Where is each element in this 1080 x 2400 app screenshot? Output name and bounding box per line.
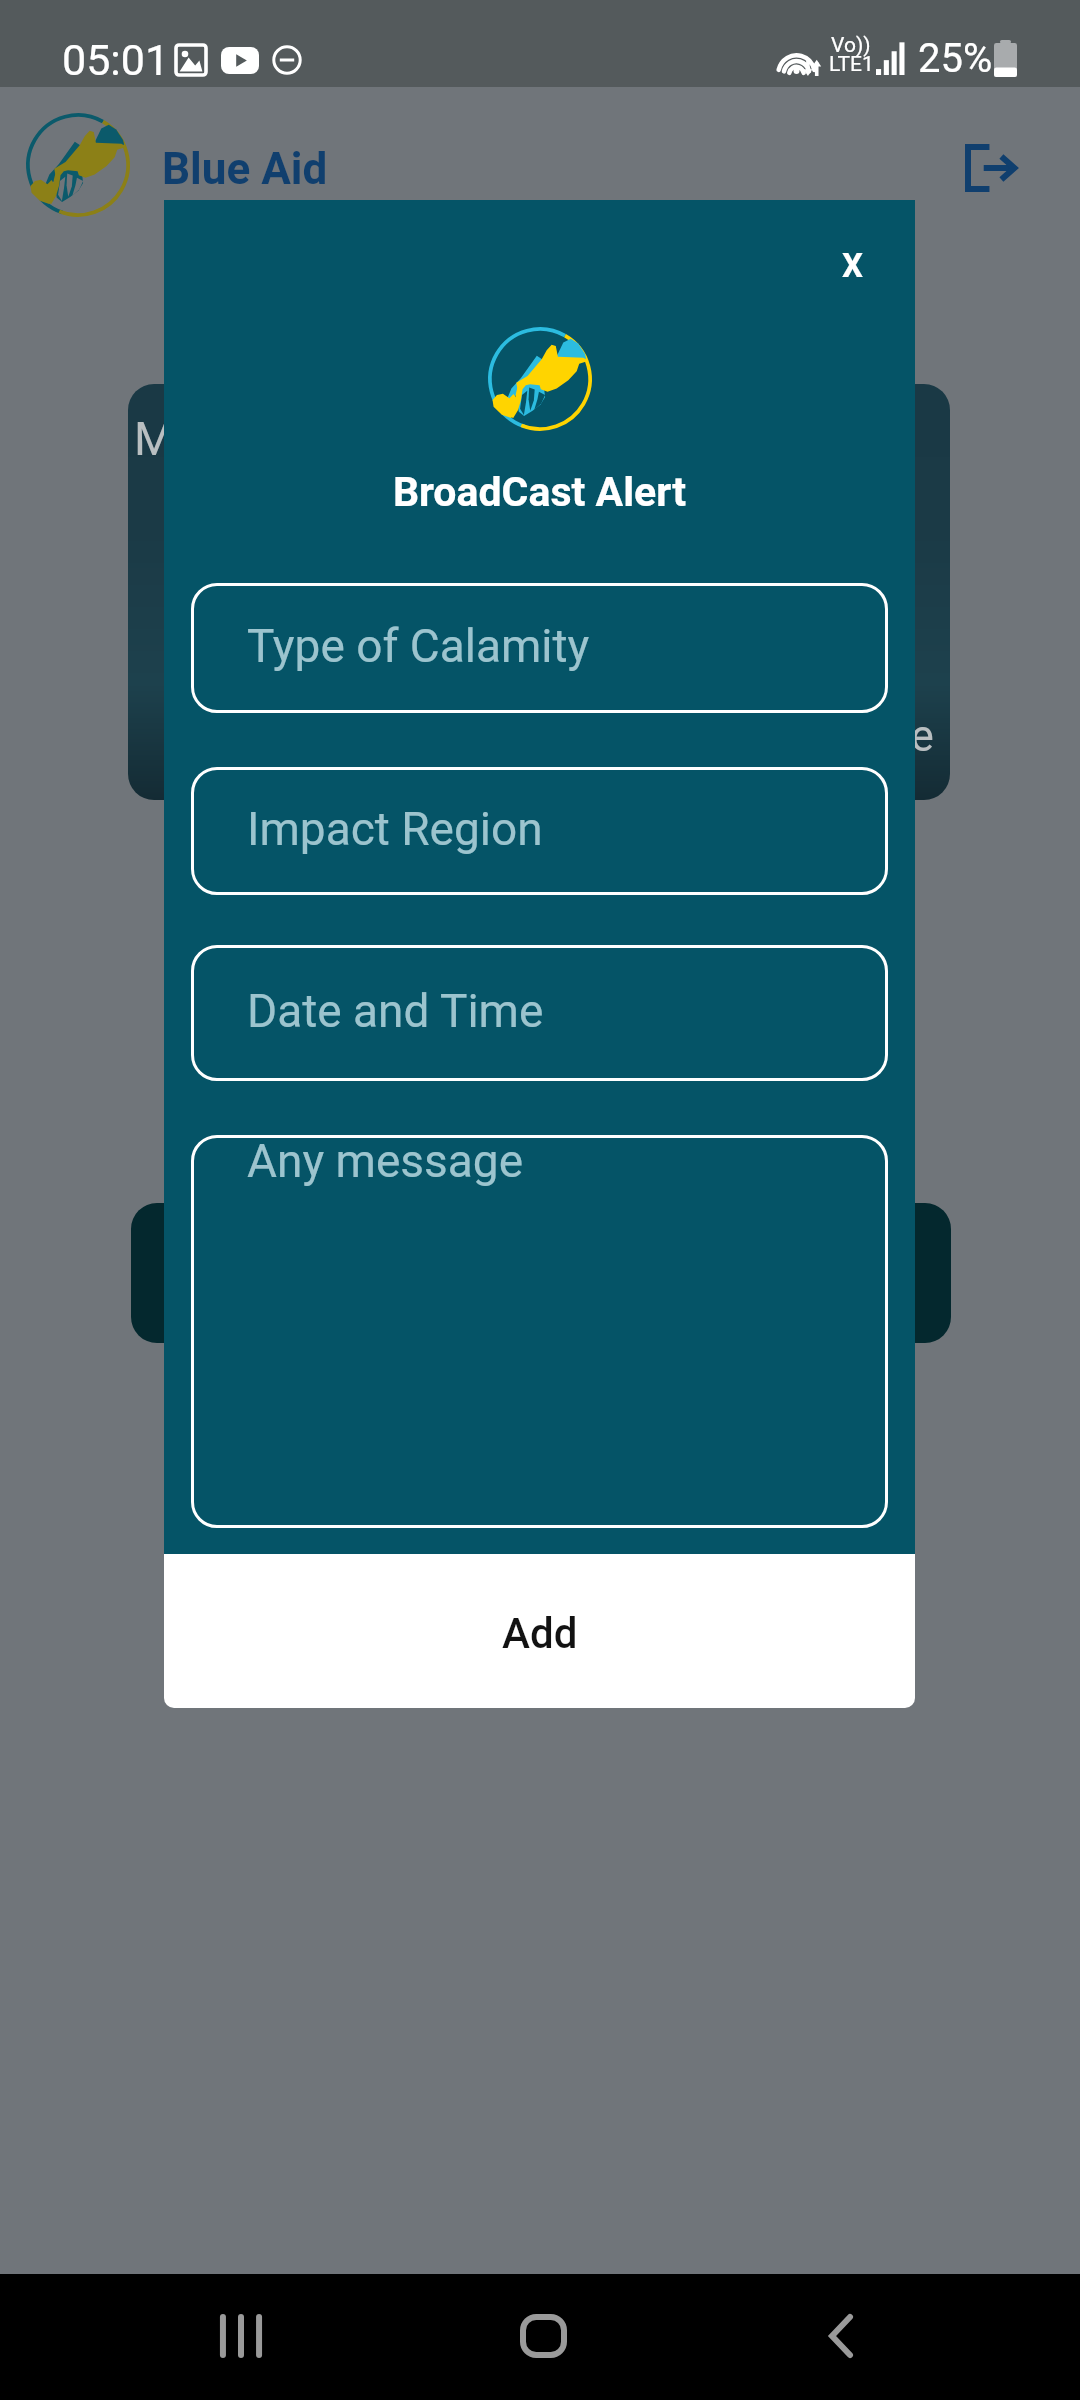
staticText: Blue Aid xyxy=(162,143,328,195)
staticText: X xyxy=(842,246,863,285)
button[interactable]: Recent apps xyxy=(196,2291,286,2381)
button[interactable]: Alerts card xyxy=(131,1203,951,1343)
button[interactable]: Mangaluru xyxy=(128,384,950,800)
staticText: Type of Calamity xyxy=(247,619,590,673)
button[interactable]: Date and Time xyxy=(191,945,888,1081)
button[interactable]: Impact Region xyxy=(191,767,888,895)
staticText: Date and Time xyxy=(247,984,544,1038)
button[interactable]: Close dialog xyxy=(814,227,890,303)
button[interactable]: Add xyxy=(164,1554,915,1708)
button[interactable]: Home xyxy=(498,2291,588,2381)
staticText: 05:01 xyxy=(62,35,170,85)
staticText: LTE1 xyxy=(829,52,874,77)
staticText: Any message xyxy=(247,1134,524,1188)
staticText: 25% xyxy=(918,35,993,82)
staticText: Impact Region xyxy=(247,802,543,856)
staticText: BroadCast Alert xyxy=(164,468,915,516)
staticText: Add xyxy=(502,1609,578,1658)
button[interactable]: Back xyxy=(796,2291,886,2381)
button[interactable]: Logout xyxy=(939,116,1043,220)
staticText: Live xyxy=(855,710,934,762)
staticText: Vo)) xyxy=(831,33,871,58)
staticText: Mangaluru xyxy=(134,412,353,466)
button[interactable]: Type of Calamity xyxy=(191,583,888,713)
button[interactable]: Any message xyxy=(191,1135,888,1528)
